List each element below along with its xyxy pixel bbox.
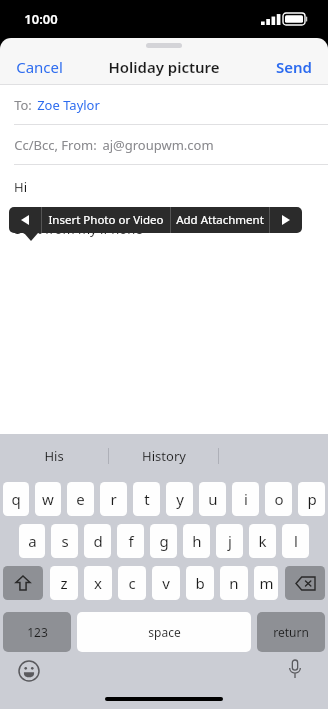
button[interactable]: space <box>77 612 251 652</box>
staticText: c <box>128 573 136 593</box>
staticText: e <box>76 489 85 509</box>
button[interactable]: x <box>84 566 112 600</box>
button[interactable]: Emoji <box>18 660 40 682</box>
button[interactable]: z <box>50 566 78 600</box>
button[interactable]: n <box>220 566 248 600</box>
button[interactable]: History <box>109 434 218 478</box>
staticText: v <box>162 573 170 593</box>
staticText: q <box>11 489 21 509</box>
button[interactable]: a <box>19 524 45 558</box>
button[interactable]: w <box>35 482 61 516</box>
staticText: aj@groupwm.com <box>102 136 214 154</box>
staticText: k <box>258 531 267 551</box>
staticText: i <box>244 489 248 509</box>
button[interactable]: q <box>3 482 29 516</box>
button[interactable]: k <box>249 524 276 558</box>
staticText: m <box>259 573 274 593</box>
staticText: y <box>176 489 184 509</box>
button[interactable]: j <box>216 524 243 558</box>
button[interactable]: y <box>166 482 193 516</box>
button[interactable]: r <box>100 482 127 516</box>
button[interactable]: i <box>232 482 259 516</box>
staticText: a <box>28 531 37 551</box>
button[interactable]: d <box>84 524 111 558</box>
button[interactable]: Next <box>270 207 302 233</box>
button[interactable]: t <box>133 482 160 516</box>
button[interactable]: g <box>150 524 177 558</box>
staticText: u <box>208 489 218 509</box>
staticText: 123 <box>27 624 48 640</box>
button[interactable]: Send <box>264 51 328 83</box>
staticText: Add Attachment <box>176 212 264 228</box>
staticText: History <box>142 447 186 465</box>
button[interactable]: o <box>265 482 292 516</box>
staticText: 10:00 <box>24 10 58 28</box>
staticText: z <box>60 573 68 593</box>
button[interactable]: e <box>67 482 94 516</box>
button[interactable]: Dictate <box>288 660 306 678</box>
button[interactable]: v <box>152 566 180 600</box>
button[interactable]: Insert Photo or Video <box>42 207 170 233</box>
button[interactable]: His <box>0 434 108 478</box>
staticText: b <box>195 573 205 593</box>
staticText: t <box>144 489 150 509</box>
button[interactable]: Add Attachment <box>171 207 269 233</box>
button[interactable]: To: <box>0 85 328 124</box>
staticText: Holiday picture <box>108 57 220 77</box>
staticText: space <box>148 624 181 640</box>
button[interactable]: f <box>117 524 144 558</box>
staticText: s <box>61 531 69 551</box>
staticText: x <box>94 573 102 593</box>
button[interactable]: h <box>183 524 210 558</box>
staticText: Send <box>276 57 312 77</box>
staticText: Cc/Bcc, From: <box>14 136 97 154</box>
button[interactable]: Cc/Bcc, From: <box>0 125 328 164</box>
staticText: Cancel <box>16 57 63 77</box>
staticText: Hi <box>14 178 27 196</box>
button[interactable]: c <box>118 566 146 600</box>
staticText: l <box>294 531 298 551</box>
staticText: f <box>128 531 134 551</box>
staticText: r <box>110 489 117 509</box>
staticText: d <box>93 531 103 551</box>
staticText: w <box>42 489 54 509</box>
staticText: g <box>159 531 169 551</box>
button[interactable]: Shift <box>3 566 43 600</box>
button[interactable]: Previous <box>9 207 41 233</box>
staticText: p <box>307 489 317 509</box>
button[interactable]: l <box>282 524 309 558</box>
staticText: return <box>273 624 309 640</box>
button[interactable]: u <box>199 482 226 516</box>
staticText: h <box>192 531 202 551</box>
button[interactable]: s <box>51 524 78 558</box>
staticText: Insert Photo or Video <box>48 212 164 228</box>
staticText: His <box>44 447 64 465</box>
staticText: Zoe Taylor <box>37 96 100 114</box>
button[interactable]: 123 <box>3 612 71 652</box>
staticText: Sent from my iPhone <box>14 220 143 238</box>
button[interactable]: b <box>186 566 214 600</box>
button[interactable]: return <box>257 612 325 652</box>
button[interactable]: Cancel <box>0 51 75 83</box>
staticText: o <box>274 489 284 509</box>
button[interactable]: m <box>254 566 278 600</box>
button[interactable]: p <box>298 482 325 516</box>
staticText: j <box>228 531 232 551</box>
staticText: To: <box>14 96 32 114</box>
button[interactable]: Backspace <box>285 566 325 600</box>
staticText: n <box>229 573 239 593</box>
